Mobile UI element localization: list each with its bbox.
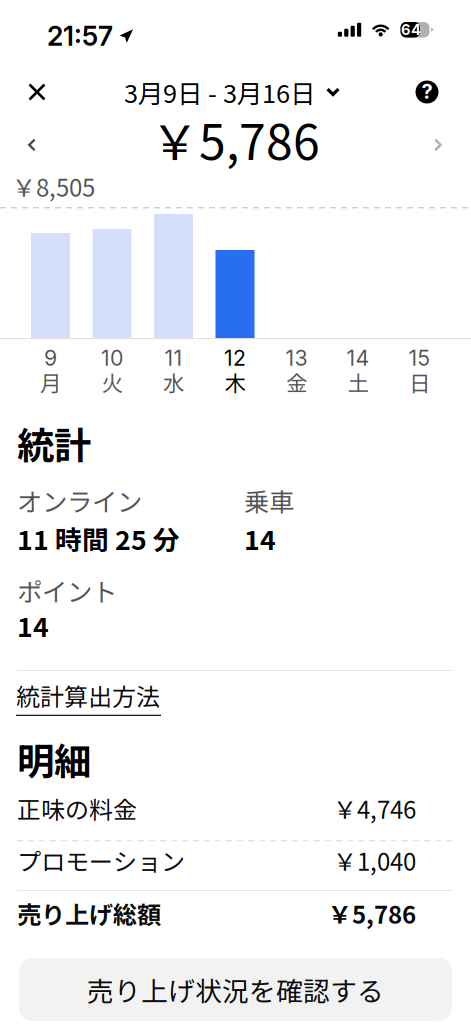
staticText: 14 bbox=[17, 606, 49, 645]
staticText: 11 時間 25 分 bbox=[17, 519, 180, 558]
staticText: 売り上げ総額 bbox=[17, 896, 161, 931]
staticText: 木 bbox=[225, 367, 246, 397]
button[interactable]: Previous week bbox=[9, 122, 55, 168]
staticText: 土 bbox=[348, 367, 369, 397]
button[interactable]: 統計算出方法 bbox=[16, 678, 216, 716]
staticText: ￥4,746 bbox=[333, 791, 416, 826]
staticText: 金 bbox=[286, 367, 307, 397]
staticText: 9 bbox=[44, 345, 57, 371]
staticText: 明細 bbox=[17, 732, 91, 786]
staticText: ￥8,505 bbox=[12, 169, 95, 204]
staticText: 日 bbox=[409, 367, 430, 397]
staticText: ￥5,786 bbox=[151, 104, 320, 174]
button[interactable]: 3月9日 - 3月16日 bbox=[120, 70, 344, 114]
staticText: ポイント bbox=[17, 572, 117, 609]
button[interactable]: 売り上げ状況を確認する bbox=[19, 958, 452, 1021]
staticText: 15 bbox=[409, 345, 431, 371]
staticText: 乗車 bbox=[244, 482, 294, 519]
staticText: 3月9日 - 3月16日 bbox=[124, 74, 315, 110]
staticText: 64 bbox=[401, 21, 421, 39]
staticText: ? bbox=[421, 79, 432, 104]
staticText: ￥1,040 bbox=[333, 843, 416, 878]
staticText: ￥5,786 bbox=[328, 896, 416, 931]
staticText: 14 bbox=[347, 345, 370, 371]
staticText: 火 bbox=[101, 367, 122, 397]
staticText: プロモーション bbox=[17, 843, 185, 878]
staticText: 11 bbox=[165, 345, 183, 371]
staticText: 14 bbox=[244, 519, 276, 558]
button[interactable]: Help bbox=[404, 70, 450, 114]
staticText: 月 bbox=[40, 367, 61, 397]
staticText: 統計算出方法 bbox=[16, 678, 160, 713]
button[interactable]: Next week bbox=[415, 122, 461, 168]
staticText: 統計 bbox=[17, 416, 91, 470]
button[interactable]: Close bbox=[14, 70, 60, 114]
staticText: 正味の料金 bbox=[17, 791, 137, 826]
staticText: 21:57 bbox=[47, 20, 113, 52]
staticText: 13 bbox=[286, 345, 308, 371]
staticText: オンライン bbox=[17, 482, 142, 519]
staticText: 水 bbox=[163, 367, 184, 397]
staticText: 10 bbox=[101, 345, 123, 371]
staticText: 12 bbox=[224, 345, 246, 371]
staticText: 売り上げ状況を確認する bbox=[87, 970, 384, 1009]
